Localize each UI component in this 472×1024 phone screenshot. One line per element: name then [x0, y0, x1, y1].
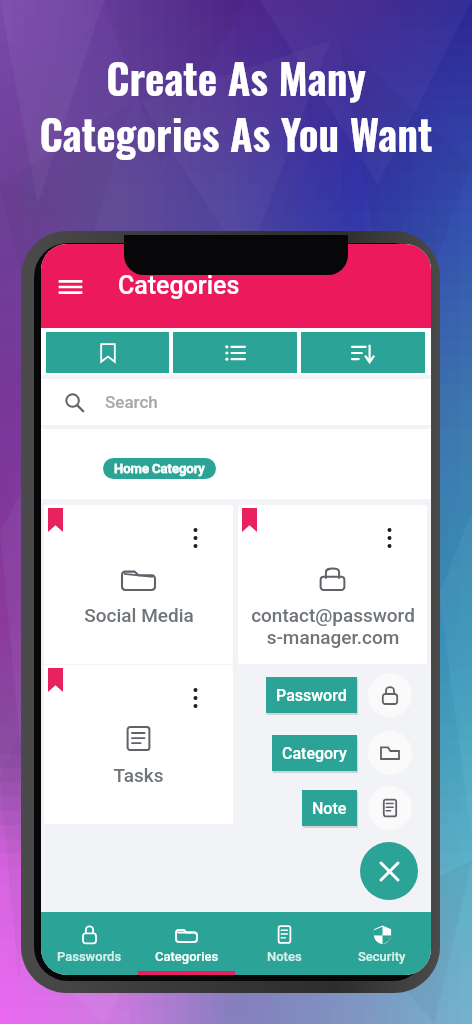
staticText: Category: [282, 744, 347, 763]
button[interactable]: Categories: [138, 912, 235, 975]
staticText: Notes: [267, 949, 302, 964]
staticText: Security: [358, 949, 406, 964]
button[interactable]: List view: [173, 332, 297, 373]
button[interactable]: Password: [266, 677, 357, 713]
staticText: contact@password s-manager.com: [251, 604, 415, 649]
button[interactable]: Notes: [235, 912, 333, 975]
button[interactable]: Category: [272, 735, 357, 771]
staticText: Social Media: [84, 604, 194, 626]
button[interactable]: Password: [368, 673, 412, 717]
staticText: Create As Many: [0, 46, 472, 108]
button[interactable]: Security: [333, 912, 431, 975]
button[interactable]: Search: [41, 379, 431, 425]
staticText: Search: [105, 392, 158, 412]
staticText: Tasks: [113, 764, 164, 786]
button[interactable]: Home Category: [103, 458, 216, 479]
button[interactable]: Social Media: [44, 505, 233, 664]
button[interactable]: Open navigation menu: [49, 266, 91, 308]
staticText: Categories: [155, 949, 219, 964]
button[interactable]: contact@password s-manager.com: [238, 505, 427, 664]
button[interactable]: Note: [302, 790, 357, 826]
button[interactable]: Favourites: [46, 332, 169, 373]
staticText: Home Category: [114, 461, 205, 476]
staticText: Categories As You Want: [0, 102, 472, 164]
staticText: Passwords: [57, 949, 122, 964]
button[interactable]: Passwords: [41, 912, 138, 975]
button[interactable]: Sort: [301, 332, 425, 373]
button[interactable]: Note: [368, 786, 412, 830]
staticText: Note: [312, 799, 347, 818]
staticText: Categories: [118, 271, 240, 300]
staticText: Password: [276, 686, 347, 705]
button[interactable]: Category: [368, 731, 412, 775]
button[interactable]: Tasks: [44, 665, 233, 824]
button[interactable]: Close menu: [360, 842, 418, 900]
